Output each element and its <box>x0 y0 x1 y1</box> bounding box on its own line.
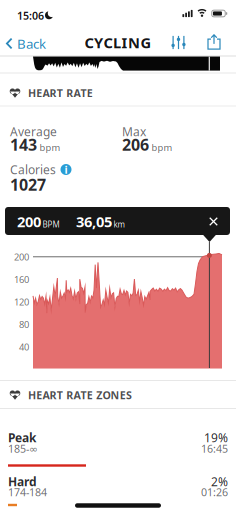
staticText: 160 <box>14 273 29 286</box>
staticText: km <box>113 219 124 230</box>
button[interactable]: Close <box>208 216 219 227</box>
button[interactable]: Calories info <box>60 163 72 175</box>
staticText: 2% <box>211 473 228 489</box>
staticText: 200 <box>14 251 29 263</box>
staticText: 206 <box>122 134 149 155</box>
staticText: Average <box>10 123 57 139</box>
staticText: bpm <box>151 141 172 154</box>
button[interactable]: Chart settings <box>169 33 187 51</box>
staticText: 120 <box>14 296 29 308</box>
staticText: 80 <box>19 318 29 331</box>
staticText: Max <box>122 123 146 139</box>
staticText: HEART RATE <box>28 86 93 100</box>
staticText: CYCLING <box>84 33 151 52</box>
staticText: 143 <box>10 134 37 155</box>
staticText: Calories <box>10 161 56 177</box>
staticText: Hard <box>8 473 37 489</box>
staticText: 15:06 <box>17 8 44 23</box>
staticText: bpm <box>39 141 60 154</box>
button[interactable]: Share <box>205 33 223 51</box>
staticText: i <box>64 162 67 177</box>
staticText: 185-∞ <box>8 441 38 456</box>
staticText: 40 <box>19 341 29 353</box>
staticText: 19% <box>204 429 228 445</box>
staticText: 1027 <box>10 174 46 195</box>
staticText: 36,05 <box>76 212 112 231</box>
staticText: BPM <box>42 219 59 230</box>
staticText: 200 <box>17 212 41 231</box>
staticText: 174-184 <box>8 485 47 499</box>
staticText: 01:26 <box>201 485 228 499</box>
staticText: 16:45 <box>201 441 228 456</box>
staticText: Back <box>17 35 46 52</box>
staticText: Peak <box>8 429 36 445</box>
staticText: HEART RATE ZONES <box>28 388 132 402</box>
button[interactable]: Back <box>5 33 47 53</box>
